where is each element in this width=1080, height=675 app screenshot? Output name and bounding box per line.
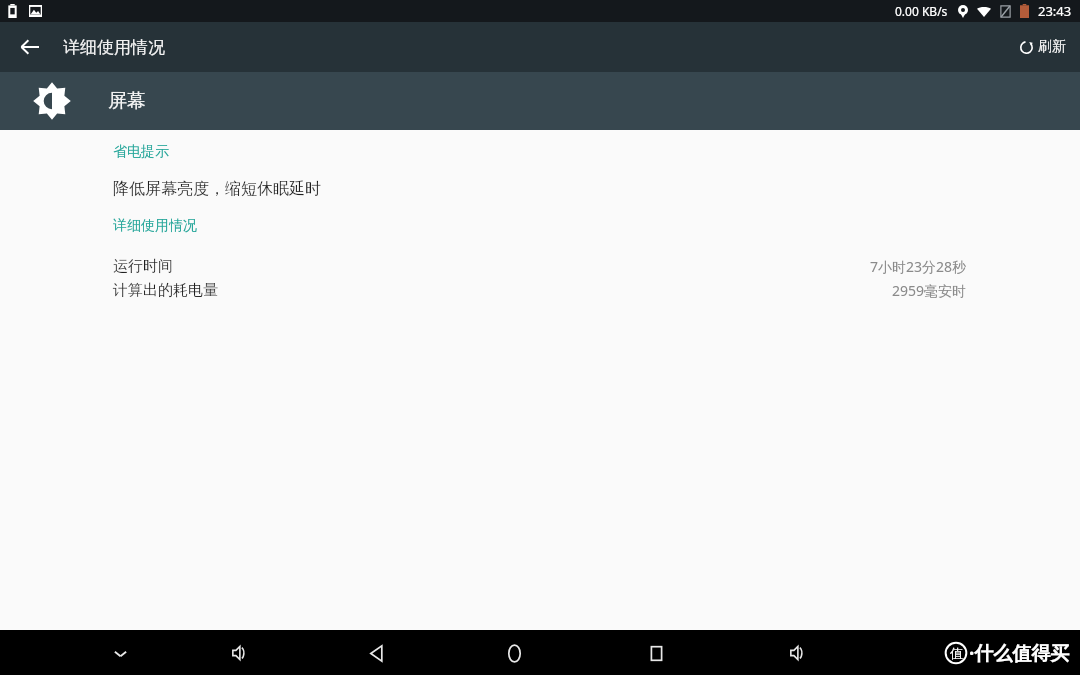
staticText: 2959毫安时 — [891, 281, 966, 300]
staticText: 7小时23分28秒 — [869, 257, 966, 276]
staticText: 23:43 — [1038, 2, 1072, 20]
button[interactable]: 刷新 — [1013, 32, 1072, 62]
staticText: 运行时间 — [113, 257, 173, 276]
button[interactable]: Back — [12, 29, 48, 65]
button[interactable]: Recents — [634, 631, 678, 675]
button[interactable]: Back — [354, 631, 398, 675]
button[interactable]: Volume down — [217, 631, 261, 675]
staticText: 省电提示 — [113, 143, 169, 161]
button[interactable]: 运行时间 — [0, 257, 1080, 276]
button[interactable]: Hide keyboard — [98, 631, 142, 675]
staticText: 值 — [950, 645, 963, 661]
staticText: 计算出的耗电量 — [113, 281, 218, 300]
staticText: ·什么值得买 — [969, 640, 1070, 666]
button[interactable]: 计算出的耗电量 — [0, 281, 1080, 300]
staticText: 刷新 — [1038, 38, 1066, 56]
staticText: 降低屏幕亮度，缩短休眠延时 — [113, 179, 321, 199]
staticText: 0.00 KB/s — [895, 3, 948, 19]
button[interactable]: Volume up — [775, 631, 819, 675]
staticText: 详细使用情况 — [113, 217, 197, 235]
staticText: 详细使用情况 — [63, 37, 165, 58]
staticText: 屏幕 — [108, 89, 146, 113]
button[interactable]: Home — [492, 631, 536, 675]
